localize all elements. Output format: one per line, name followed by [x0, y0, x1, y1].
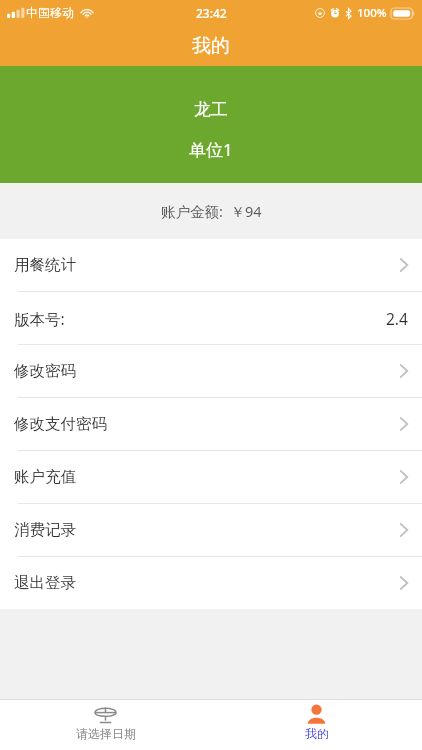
staticText: 修改密码 — [14, 361, 76, 381]
staticText: 我的 — [192, 34, 230, 58]
staticText: 23:42 — [196, 5, 227, 21]
staticText: 用餐统计 — [14, 255, 76, 275]
button[interactable]: 版本号: — [0, 292, 422, 345]
button[interactable]: 账户充值 — [0, 451, 422, 504]
button[interactable]: 修改支付密码 — [0, 398, 422, 451]
staticText: 单位1 — [189, 138, 233, 161]
staticText: 账户充值 — [14, 467, 76, 487]
button[interactable]: 我的 — [211, 700, 422, 750]
button[interactable]: 用餐统计 — [0, 239, 422, 292]
staticText: 退出登录 — [14, 573, 76, 593]
staticText: 我的 — [305, 726, 329, 741]
staticText: 2.4 — [386, 308, 408, 329]
staticText: 中国移动 — [26, 5, 74, 20]
staticText: 请选择日期 — [76, 726, 136, 741]
button[interactable]: 请选择日期 — [0, 700, 211, 750]
staticText: 账户金额: ￥94 — [161, 201, 262, 221]
staticText: 修改支付密码 — [14, 414, 107, 434]
staticText: 100% — [357, 5, 387, 21]
staticText: 消费记录 — [14, 520, 76, 540]
button[interactable]: 修改密码 — [0, 345, 422, 398]
button[interactable]: 退出登录 — [0, 557, 422, 609]
button[interactable]: 消费记录 — [0, 504, 422, 557]
staticText: 版本号: — [14, 308, 65, 329]
staticText: 龙工 — [194, 99, 228, 120]
